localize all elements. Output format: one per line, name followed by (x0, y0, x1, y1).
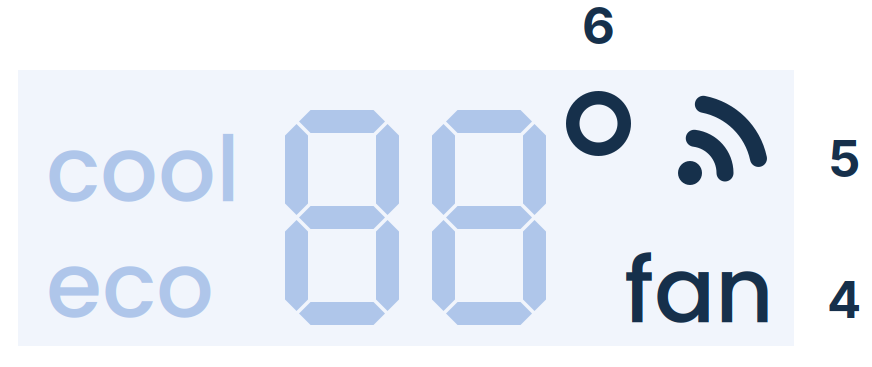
staticText: 4 (827, 269, 861, 330)
staticText: 6 (582, 0, 615, 56)
button[interactable]: Wi-Fi (665, 85, 775, 195)
button[interactable]: Degrees (566, 91, 631, 156)
staticText: cool (46, 106, 240, 233)
staticText: fan (624, 227, 774, 354)
button[interactable]: cool (46, 106, 240, 233)
button[interactable]: eco (46, 222, 214, 349)
button[interactable]: fan (624, 227, 774, 354)
staticText: eco (46, 222, 214, 349)
staticText: 5 (828, 128, 860, 189)
